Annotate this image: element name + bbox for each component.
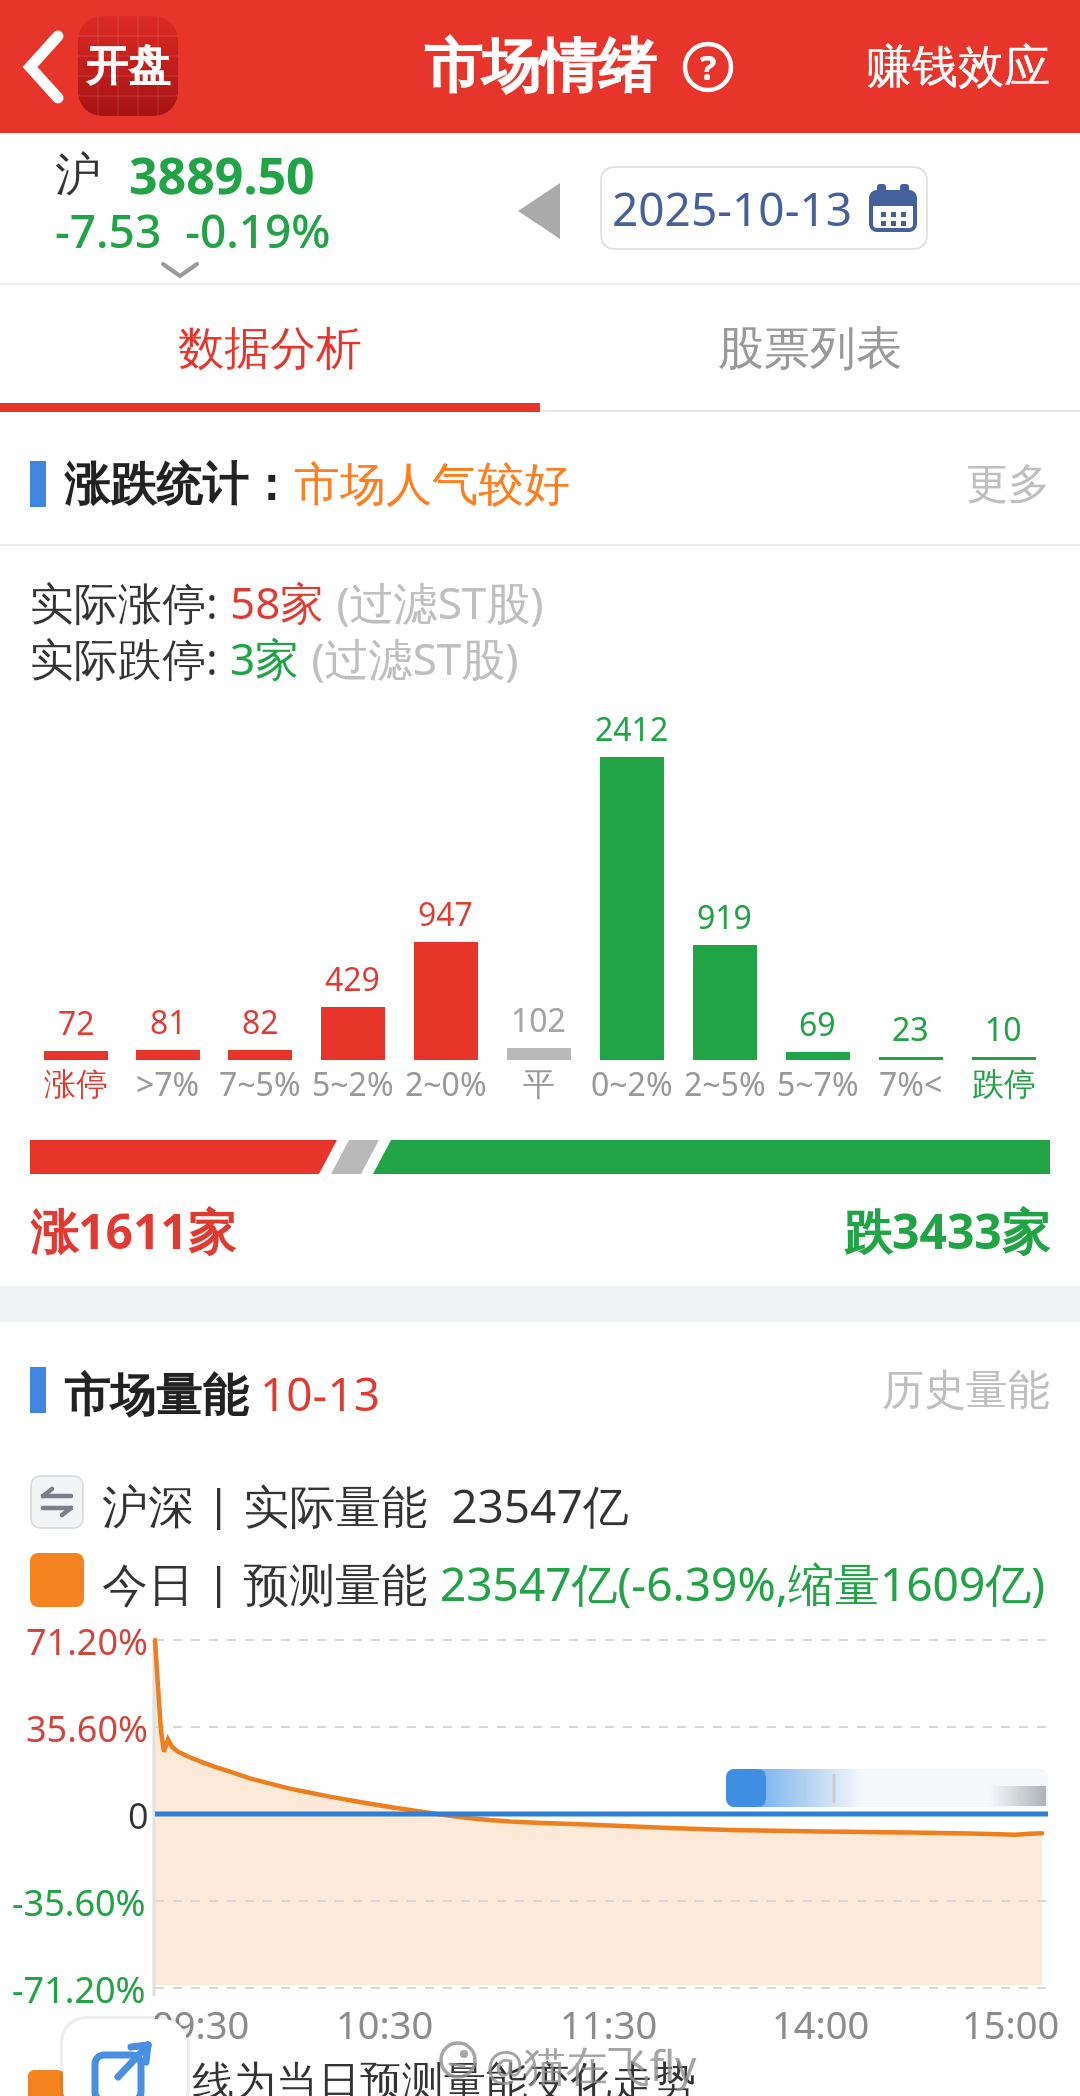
staticText: 沪 <box>55 146 101 204</box>
staticText: 15:00 <box>962 1998 1060 2050</box>
staticText: 10-13 <box>260 1362 381 1418</box>
staticText: 81 <box>150 1000 187 1044</box>
staticText: 5~2% <box>312 1062 394 1106</box>
staticText: 平 <box>523 1064 555 1104</box>
staticText: 919 <box>697 895 752 939</box>
staticText: 72 <box>58 1001 95 1045</box>
staticText: 14:00 <box>772 1998 870 2050</box>
staticText: 跌3433家 <box>844 1198 1050 1260</box>
button[interactable] <box>30 1475 84 1529</box>
staticText: 涨跌统计： <box>64 456 294 512</box>
staticText: 2~5% <box>684 1062 766 1106</box>
staticText: @猫在飞fly <box>486 2036 697 2093</box>
staticText: -7.53 -0.19% <box>55 199 331 262</box>
staticText: 10:30 <box>336 1998 434 2050</box>
staticText: 23547亿(-6.39%,缩量1609亿) <box>440 1552 1046 1608</box>
staticText: 947 <box>418 892 473 936</box>
staticText: 股票列表 <box>718 320 902 378</box>
staticText: (过滤ST股) <box>300 628 519 684</box>
button[interactable]: 2025-10-13 <box>600 166 928 250</box>
button[interactable]: 更多 <box>966 458 1050 511</box>
staticText: 2412 <box>595 707 669 751</box>
staticText: 23 <box>892 1007 929 1051</box>
staticText: 09:30 <box>152 1998 250 2050</box>
staticText: -71.20% <box>12 1965 146 2014</box>
staticText: 71.20% <box>26 1617 148 1666</box>
staticText: 102 <box>511 998 566 1042</box>
staticText: ? <box>700 44 717 90</box>
staticText: (过滤ST股) <box>325 572 544 628</box>
staticText: 58家 <box>230 572 325 628</box>
staticText: 0~2% <box>591 1062 673 1106</box>
staticText: 数据分析 <box>178 320 362 378</box>
staticText: 2025-10-13 <box>612 177 853 240</box>
staticText: 历史量能 <box>882 1364 1050 1417</box>
staticText: 涨停 <box>44 1064 108 1104</box>
staticText: 开盘 <box>86 40 170 93</box>
staticText: 沪深 | 实际量能 23547亿 <box>102 1474 629 1530</box>
staticText: 市场量能 <box>64 1362 260 1418</box>
staticText: 跌停 <box>972 1064 1036 1104</box>
button[interactable]: 股票列表 <box>540 285 1080 412</box>
staticText: 涨1611家 <box>30 1198 236 1260</box>
staticText: 赚钱效应 <box>866 38 1050 96</box>
staticText: 5~7% <box>777 1062 859 1106</box>
button[interactable]: 历史量能 <box>882 1364 1050 1417</box>
button[interactable] <box>16 24 76 110</box>
button[interactable] <box>63 2019 187 2096</box>
staticText: 69 <box>799 1002 836 1046</box>
staticText: 35.60% <box>26 1704 148 1753</box>
staticText: 3家 <box>230 628 300 684</box>
button[interactable]: 赚钱效应 <box>866 38 1050 96</box>
staticText: 7%< <box>879 1062 943 1106</box>
staticText: 7~5% <box>219 1062 301 1106</box>
staticText: 82 <box>242 1000 279 1044</box>
staticText: 0 <box>128 1791 149 1840</box>
staticText: 10 <box>985 1007 1022 1051</box>
staticText: 11:30 <box>560 1998 658 2050</box>
staticText: 2~0% <box>405 1062 487 1106</box>
staticText: 429 <box>325 957 380 1001</box>
button[interactable]: 数据分析 <box>0 285 540 412</box>
staticText: 橙色曲线为当日预测量能变化走势 <box>66 2056 696 2096</box>
staticText: -35.60% <box>12 1878 146 1927</box>
staticText: 市场情绪 <box>424 30 656 103</box>
staticText: 今日 | 预测量能 <box>102 1552 440 1608</box>
staticText: 实际跌停: <box>30 628 230 684</box>
staticText: 市场人气较好 <box>294 456 570 512</box>
staticText: 3889.50 <box>129 141 315 209</box>
staticText: 实际涨停: <box>30 572 230 628</box>
staticText: 更多 <box>966 458 1050 511</box>
staticText: >7% <box>136 1062 200 1106</box>
